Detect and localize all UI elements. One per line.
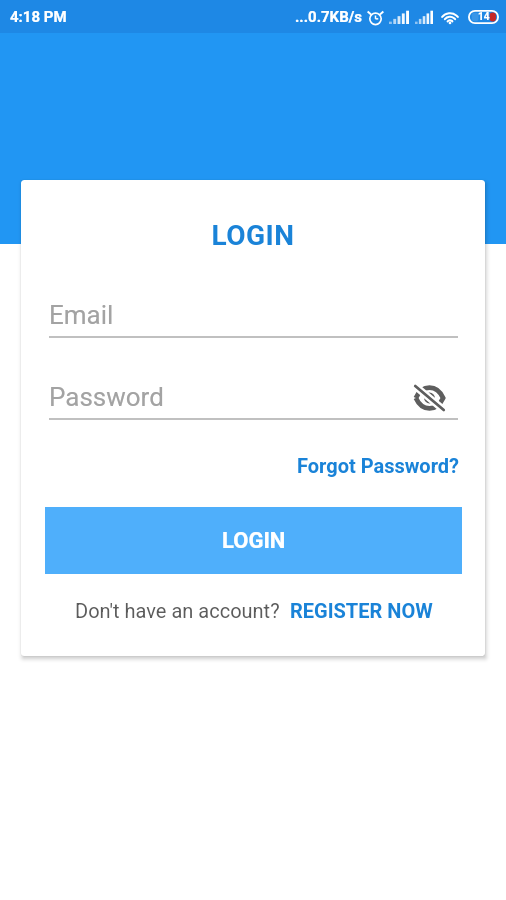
staticText: ...0.7KB/s [295, 8, 362, 26]
staticText: Password [49, 382, 164, 412]
button[interactable]: Email [49, 300, 458, 338]
button[interactable]: REGISTER NOW [287, 594, 436, 627]
staticText: REGISTER NOW [290, 599, 433, 622]
staticText: Forgot Password? [297, 454, 460, 477]
staticText: LOGIN [222, 528, 286, 554]
staticText: Email [49, 300, 114, 330]
button[interactable]: Show password [410, 379, 448, 417]
button[interactable]: Forgot Password? [291, 449, 466, 482]
staticText: LOGIN [21, 219, 485, 252]
staticText: 4:18 PM [10, 8, 67, 26]
staticText: Don't have an account? [75, 599, 280, 622]
button[interactable]: Password [49, 382, 458, 420]
button[interactable]: LOGIN [45, 507, 462, 574]
staticText: 14 [478, 11, 490, 23]
